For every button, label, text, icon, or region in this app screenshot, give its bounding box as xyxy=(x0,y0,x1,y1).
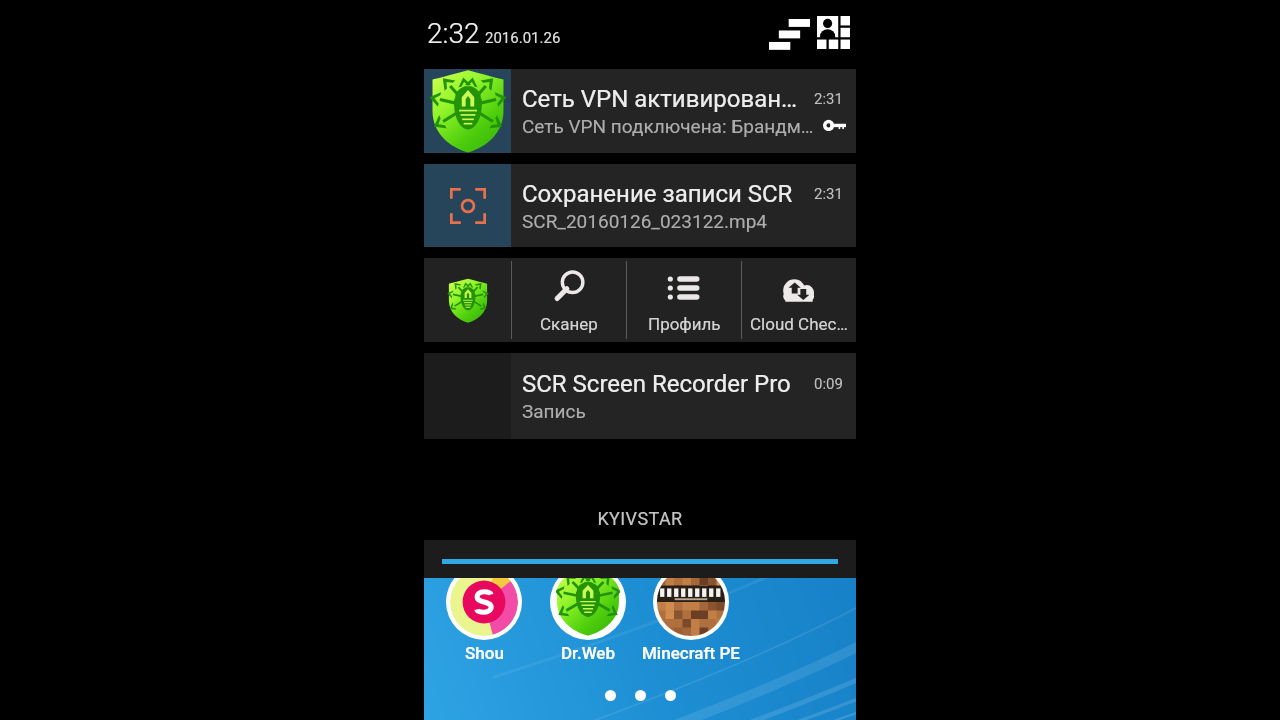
button[interactable]: Сканер xyxy=(512,258,626,342)
button[interactable]: Сеть VPN активирован… xyxy=(424,69,856,153)
staticText: 2016.01.26 xyxy=(485,29,561,47)
button[interactable]: Quick settings xyxy=(817,16,850,50)
staticText: Сеть VPN активирован… xyxy=(522,85,808,113)
staticText: Shou xyxy=(465,643,504,663)
staticText: Сеть VPN подключена: Брандм… xyxy=(522,115,817,137)
staticText: Сохранение записи SCR xyxy=(522,180,808,208)
button[interactable]: Notifications xyxy=(769,19,810,50)
button[interactable]: Сохранение записи SCR xyxy=(424,164,856,247)
button[interactable]: Dr.Web xyxy=(518,578,658,663)
staticText: Minecraft PE xyxy=(642,643,740,663)
button[interactable]: Close notification shade xyxy=(424,540,856,578)
staticText: KYIVSTAR xyxy=(424,508,856,529)
button[interactable]: Dr.Web xyxy=(424,258,511,342)
staticText: 2:31 xyxy=(814,185,843,203)
staticText: 2:31 xyxy=(814,90,843,108)
button[interactable]: SCR Screen Recorder Pro xyxy=(424,353,856,439)
button[interactable]: Shou xyxy=(424,578,554,663)
staticText: SCR_20160126_023122.mp4 xyxy=(522,210,822,232)
staticText: SCR Screen Recorder Pro xyxy=(522,370,808,398)
staticText: Cloud Chec… xyxy=(750,314,848,334)
staticText: 2:32 xyxy=(427,17,480,50)
button[interactable]: Cloud Chec… xyxy=(742,258,856,342)
staticText: Запись xyxy=(522,400,822,422)
staticText: 0:09 xyxy=(814,375,843,393)
staticText: Сканер xyxy=(540,314,598,334)
button[interactable]: Minecraft PE xyxy=(621,578,761,663)
button[interactable]: Профиль xyxy=(627,258,741,342)
staticText: Профиль xyxy=(648,314,721,334)
staticText: Dr.Web xyxy=(561,643,616,663)
